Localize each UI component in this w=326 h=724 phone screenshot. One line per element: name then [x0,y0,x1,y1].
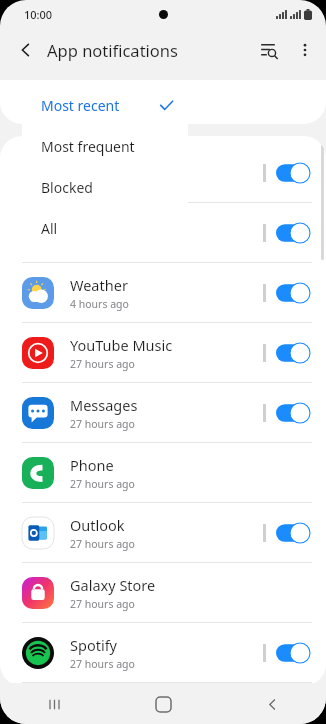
staticText: YouTube Music [70,335,173,355]
button[interactable]: Toggle notifications [276,403,310,423]
staticText: Galaxy Store [70,575,156,595]
button[interactable]: Toggle notifications [276,163,310,183]
staticText: 27 hours ago [70,357,135,371]
staticText: 27 hours ago [70,417,135,431]
button[interactable]: Home [143,684,183,724]
button[interactable]: Most recent [22,85,188,126]
button[interactable]: Toggle notifications [276,223,310,243]
button[interactable]: Recent apps [34,684,74,724]
button[interactable]: Back [252,684,292,724]
button[interactable]: Toggle notifications [276,643,310,663]
button[interactable]: Toggle notifications [0,143,326,203]
button[interactable]: Toggle notifications [276,283,310,303]
staticText: Spotify [70,635,118,655]
button[interactable]: YouTube Music [0,323,326,383]
button[interactable]: Weather [0,263,326,323]
staticText: 4 hours ago [70,297,129,311]
button[interactable]: Galaxy Store [0,563,326,623]
button[interactable]: All [22,208,188,248]
staticText: Blocked [41,178,174,197]
button[interactable]: Phone [0,443,326,503]
staticText: 27 hours ago [70,477,135,491]
staticText: Weather [70,275,128,295]
button[interactable]: Toggle notifications [276,523,310,543]
staticText: 10:00 [24,7,53,22]
staticText: All [41,219,174,238]
button[interactable]: Toggle notifications [0,203,326,263]
button[interactable]: Toggle notifications [276,343,310,363]
button[interactable] [0,80,326,124]
staticText: 27 hours ago [70,657,135,671]
staticText: 27 hours ago [70,597,135,611]
button[interactable]: Blocked [22,167,188,208]
button[interactable]: Back [8,32,44,68]
button[interactable]: Spotify [0,623,326,683]
button[interactable]: Search [250,31,288,69]
staticText: Most recent [41,96,159,115]
staticText: Messages [70,395,138,415]
staticText: App notifications [47,39,178,61]
staticText: Phone [70,455,114,475]
staticText: Most frequent [41,137,174,156]
button[interactable]: Messages [0,383,326,443]
button[interactable]: Outlook [0,503,326,563]
button[interactable]: Most frequent [22,126,188,167]
staticText: 27 hours ago [70,537,135,551]
staticText: Outlook [70,515,125,535]
button[interactable]: More options [288,33,322,67]
